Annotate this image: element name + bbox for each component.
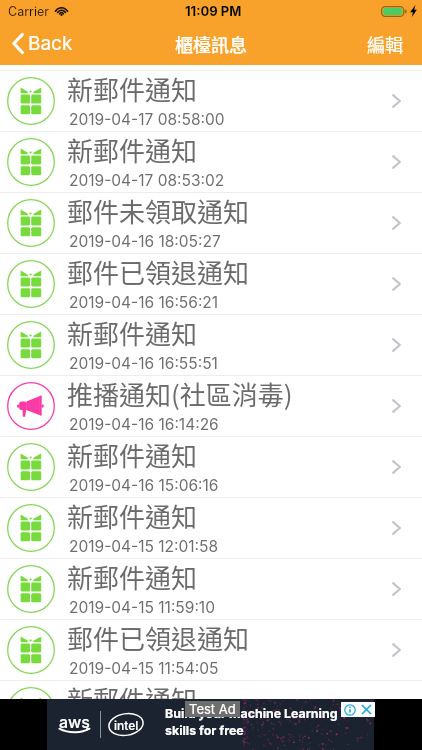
staticText: skills for free: [165, 723, 244, 738]
staticText: 11:09 PM: [185, 3, 242, 19]
staticText: 2019-04-17 08:58:00: [69, 110, 225, 129]
staticText: 櫃檯訊息: [175, 31, 247, 57]
staticText: 新郵件通知: [67, 314, 198, 352]
staticText: Build your Machine Learning: [165, 706, 338, 721]
button[interactable]: 新郵件通知: [0, 497, 422, 558]
button[interactable]: 郵件已領退通知: [0, 253, 422, 314]
staticText: 2019-04-16 16:14:26: [69, 415, 219, 434]
staticText: 2019-04-15 11:54:05: [69, 659, 219, 678]
button[interactable]: 新郵件通知: [0, 436, 422, 497]
staticText: 新郵件通知: [67, 70, 198, 108]
button[interactable]: 編輯: [361, 25, 422, 63]
staticText: aws: [59, 712, 90, 731]
button[interactable]: Close ad: [358, 702, 375, 717]
staticText: 郵件已領退通知: [67, 253, 250, 291]
staticText: 新郵件通知: [67, 680, 198, 718]
staticText: 2019-04-15 11:20:18: [69, 720, 215, 739]
staticText: 2019-04-16 18:05:27: [69, 232, 221, 251]
button[interactable]: 新郵件通知: [0, 314, 422, 375]
staticText: 2019-04-17 08:53:02: [69, 171, 225, 190]
staticText: intel: [114, 718, 139, 733]
staticText: Test Ad: [189, 701, 236, 717]
button[interactable]: Back: [0, 26, 79, 61]
staticText: 郵件未領取通知: [67, 192, 250, 230]
staticText: Carrier: [8, 4, 49, 19]
button[interactable]: 新郵件通知: [0, 131, 422, 192]
staticText: 推播通知(社區消毒): [67, 375, 293, 413]
button[interactable]: 郵件已領退通知: [0, 619, 422, 680]
staticText: 2019-04-16 16:56:21: [69, 293, 219, 312]
staticText: 2019-04-16 16:55:51: [69, 354, 218, 373]
staticText: 新郵件通知: [67, 131, 198, 169]
staticText: 新郵件通知: [67, 558, 198, 596]
button[interactable]: Ad information: [341, 702, 358, 717]
button[interactable]: 推播通知(社區消毒): [0, 375, 422, 436]
staticText: 2019-04-15 12:01:58: [69, 537, 219, 556]
staticText: 2019-04-16 15:06:16: [69, 476, 219, 495]
staticText: Back: [28, 32, 73, 55]
button[interactable]: 郵件未領取通知: [0, 192, 422, 253]
staticText: 2019-04-15 11:59:10: [69, 598, 215, 617]
staticText: 新郵件通知: [67, 497, 198, 535]
button[interactable]: 新郵件通知: [0, 680, 422, 741]
staticText: 郵件已領退通知: [67, 619, 250, 657]
button[interactable]: aws: [47, 699, 374, 750]
button[interactable]: 新郵件通知: [0, 558, 422, 619]
staticText: 新郵件通知: [67, 436, 198, 474]
button[interactable]: 新郵件通知: [0, 70, 422, 131]
